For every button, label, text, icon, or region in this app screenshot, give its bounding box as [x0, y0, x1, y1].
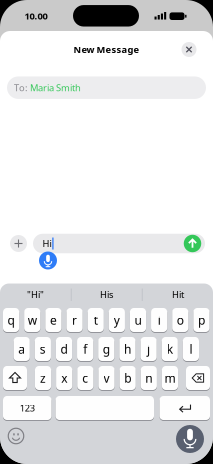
button[interactable]: c: [77, 365, 93, 391]
button[interactable]: e: [45, 307, 61, 333]
staticText: k: [167, 341, 173, 357]
staticText: His: [100, 288, 113, 301]
button[interactable]: t: [88, 307, 104, 333]
staticText: t: [94, 312, 98, 328]
staticText: w: [28, 312, 37, 328]
staticText: o: [177, 312, 184, 328]
button[interactable]: p: [193, 307, 209, 333]
button[interactable]: Hit: [143, 284, 213, 304]
button[interactable]: q: [3, 307, 19, 333]
button[interactable]: k: [162, 336, 178, 362]
button[interactable]: a: [14, 336, 30, 362]
staticText: y: [114, 312, 120, 328]
staticText: f: [83, 341, 87, 357]
button[interactable]: m: [162, 365, 178, 391]
staticText: u: [134, 312, 141, 328]
staticText: h: [124, 341, 131, 357]
button[interactable]: [186, 365, 210, 391]
staticText: z: [40, 370, 46, 386]
button[interactable]: [184, 235, 201, 252]
staticText: v: [103, 370, 109, 386]
button[interactable]: "Hi": [0, 284, 70, 304]
button[interactable]: w: [24, 307, 40, 333]
button[interactable]: [3, 365, 27, 391]
button[interactable]: To:: [7, 76, 206, 99]
staticText: a: [18, 341, 25, 357]
staticText: "Hi": [27, 288, 44, 301]
button[interactable]: l: [183, 336, 199, 362]
staticText: j: [147, 341, 150, 357]
button[interactable]: o: [172, 307, 188, 333]
staticText: n: [145, 370, 152, 386]
staticText: e: [50, 312, 57, 328]
staticText: Hit: [172, 288, 184, 301]
staticText: To:: [14, 81, 28, 94]
staticText: x: [61, 370, 67, 386]
button[interactable]: [159, 395, 210, 421]
button[interactable]: h: [119, 336, 136, 362]
button[interactable]: [55, 395, 154, 421]
button[interactable]: y: [109, 307, 125, 333]
button[interactable]: His: [71, 284, 141, 304]
staticText: Maria Smith: [30, 81, 81, 94]
button[interactable]: z: [35, 365, 51, 391]
button[interactable]: s: [35, 336, 51, 362]
staticText: m: [164, 370, 175, 386]
button[interactable]: [181, 42, 196, 57]
staticText: New Message: [73, 43, 139, 56]
staticText: c: [82, 370, 88, 386]
button[interactable]: f: [77, 336, 93, 362]
button[interactable]: u: [130, 307, 146, 333]
staticText: r: [72, 312, 77, 328]
button[interactable]: x: [56, 365, 72, 391]
staticText: g: [103, 341, 110, 357]
button[interactable]: i: [151, 307, 167, 333]
staticText: q: [8, 312, 15, 328]
staticText: l: [189, 341, 192, 357]
button[interactable]: g: [98, 336, 114, 362]
staticText: 10.00: [24, 10, 47, 22]
button[interactable]: [176, 425, 204, 453]
staticText: 123: [20, 402, 35, 414]
staticText: p: [198, 312, 205, 328]
button[interactable]: r: [66, 307, 83, 333]
button[interactable]: n: [141, 365, 157, 391]
staticText: i: [158, 312, 161, 328]
button[interactable]: 123: [3, 395, 51, 421]
button[interactable]: d: [56, 336, 72, 362]
button[interactable]: v: [98, 365, 115, 391]
button[interactable]: b: [120, 365, 136, 391]
button[interactable]: [10, 235, 27, 252]
button[interactable]: Hi: [33, 234, 205, 253]
staticText: d: [60, 341, 67, 357]
staticText: b: [124, 370, 131, 386]
button[interactable]: j: [140, 336, 157, 362]
staticText: Hi: [42, 237, 51, 249]
button[interactable]: [8, 428, 24, 444]
staticText: s: [40, 341, 46, 357]
